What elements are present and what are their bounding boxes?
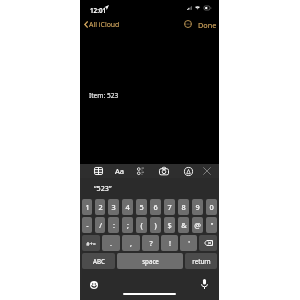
button[interactable]: Checklist [133,164,147,178]
staticText: . [110,238,112,248]
button[interactable]: $ [164,217,175,233]
staticText: Item: 523 [89,91,119,100]
button[interactable]: 2 [95,199,105,215]
staticText: ! [169,238,171,248]
staticText: " [210,220,214,230]
button[interactable]: Table [91,164,105,178]
button[interactable]: 0 [206,199,217,215]
button[interactable]: ! [161,235,178,251]
staticText: @ [194,220,201,230]
button[interactable]: “523” [80,178,126,197]
button[interactable]: 3 [108,199,119,215]
button[interactable]: Markup [181,164,195,178]
staticText: 12:01 [90,6,107,15]
staticText: 8 [181,202,186,212]
button[interactable]: & [178,217,189,233]
staticText: Aa [115,166,125,176]
staticText: ' [188,238,190,248]
button[interactable]: ) [150,217,161,233]
button[interactable]: 6 [150,199,161,215]
button[interactable]: ABC [82,253,115,269]
button[interactable]: Backspace [199,235,217,251]
button[interactable]: Close [200,164,214,178]
button[interactable]: - [82,217,92,233]
staticText: : [113,220,115,230]
staticText: Done [198,20,217,30]
button[interactable]: . [102,235,120,251]
staticText: 6 [153,202,158,212]
button[interactable]: " [206,217,217,233]
button[interactable]: space [117,253,183,269]
button[interactable]: All iCloud [84,18,120,30]
staticText: 4 [125,202,130,212]
staticText: ; [127,220,129,230]
button[interactable]: 9 [192,199,203,215]
staticText: / [99,220,102,230]
button[interactable]: 7 [164,199,175,215]
button[interactable]: More options [183,19,193,29]
staticText: return [192,257,211,265]
button[interactable]: Camera [157,164,171,178]
staticText: 1 [85,202,90,212]
staticText: 9 [195,202,200,212]
staticText: - [86,220,89,230]
staticText: #+= [86,240,96,247]
button[interactable]: ; [122,217,133,233]
staticText: ( [140,220,143,230]
button[interactable]: return [185,253,217,269]
staticText: $ [167,220,172,230]
staticText: 0 [209,202,214,212]
staticText: “523” [94,183,112,193]
staticText: ABC [93,257,105,265]
staticText: 7 [167,202,172,212]
staticText: & [181,220,187,230]
button[interactable]: 8 [178,199,189,215]
staticText: , [130,238,132,248]
button[interactable]: ( [136,217,147,233]
button[interactable]: Dictation [199,279,209,289]
button[interactable]: Emoji [89,280,98,289]
staticText: 2 [98,202,103,212]
staticText: All iCloud [89,20,120,29]
button[interactable]: 5 [136,199,147,215]
staticText: ? [149,238,153,248]
button[interactable]: #+= [82,235,100,251]
button[interactable]: 1 [82,199,92,215]
button[interactable]: @ [192,217,203,233]
button[interactable]: 4 [122,199,133,215]
button[interactable]: / [95,217,105,233]
staticText: 3 [111,202,116,212]
staticText: 5 [139,202,144,212]
button[interactable]: ? [142,235,159,251]
button[interactable]: Format [113,164,127,178]
button[interactable]: Done [198,19,217,30]
button[interactable]: ' [180,235,197,251]
staticText: space [142,257,159,265]
button[interactable]: , [122,235,140,251]
button[interactable]: : [108,217,119,233]
staticText: ) [154,220,157,230]
